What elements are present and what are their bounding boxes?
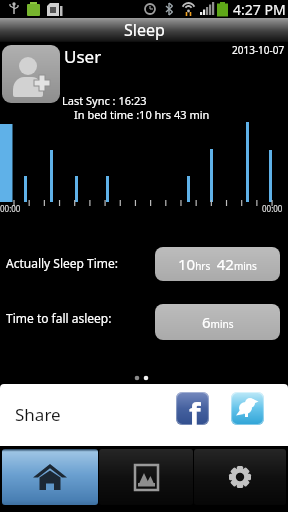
button[interactable] xyxy=(2,45,60,103)
button[interactable]: 6mins xyxy=(155,304,280,340)
button[interactable] xyxy=(194,449,286,505)
staticText: 6mins xyxy=(202,312,234,332)
staticText: 4:27 PM xyxy=(233,0,286,19)
staticText: In bed time :10 hrs 43 min xyxy=(74,107,210,122)
button[interactable]: f xyxy=(176,392,209,425)
staticText: User xyxy=(64,45,102,68)
button[interactable]: 10hrs 42mins xyxy=(155,247,280,281)
staticText: Actually Sleep Time: xyxy=(6,255,119,271)
staticText: 00:00 xyxy=(0,203,21,214)
staticText: Share xyxy=(15,403,61,426)
staticText: 10hrs 42mins xyxy=(178,254,257,274)
staticText: f xyxy=(189,393,201,425)
button[interactable] xyxy=(99,449,193,505)
button[interactable] xyxy=(2,449,98,505)
staticText: Sleep xyxy=(124,19,165,41)
staticText: Last Sync : 16:23 xyxy=(62,93,147,108)
staticText: Time to fall asleep: xyxy=(6,310,112,326)
staticText: 2013-10-07 xyxy=(232,43,285,57)
staticText: 00:00 xyxy=(262,203,283,214)
button[interactable] xyxy=(231,392,264,425)
